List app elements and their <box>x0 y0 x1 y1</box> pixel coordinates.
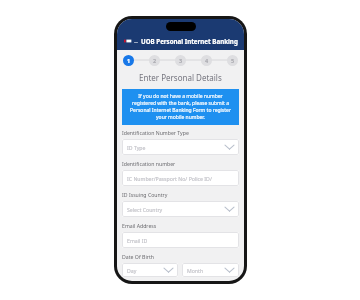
staticText: ID Issuing Country <box>122 191 168 198</box>
staticText: — <box>134 39 138 44</box>
button[interactable]: Email ID <box>122 232 239 248</box>
staticText: Day <box>127 267 137 274</box>
staticText: 3 <box>179 57 183 64</box>
other: UOB logo <box>124 39 132 43</box>
staticText: Select Country <box>127 206 163 213</box>
button[interactable]: 3 <box>175 55 186 66</box>
staticText: Month <box>187 267 204 274</box>
staticText: 4 <box>205 57 209 64</box>
staticText: IC Number/Passport No/ Police ID/Militar… <box>127 175 234 182</box>
button[interactable]: Select Country <box>122 201 239 217</box>
staticText: Email Address <box>122 222 157 229</box>
staticText: Identification Number Type <box>122 129 189 136</box>
staticText: ID Type <box>127 144 146 151</box>
button[interactable]: Month <box>182 263 239 277</box>
staticText: 1 <box>127 57 131 64</box>
staticText: If you do not have a mobile number regis… <box>127 93 234 121</box>
button[interactable]: IC Number/Passport No/ Police ID/Militar… <box>122 170 239 186</box>
staticText: 5 <box>231 57 235 64</box>
button[interactable]: 2 <box>149 55 160 66</box>
button[interactable]: 1 <box>123 55 134 66</box>
staticText: Identification number <box>122 160 176 167</box>
button[interactable]: 4 <box>201 55 212 66</box>
staticText: Enter Personal Details <box>139 72 222 83</box>
button[interactable]: ID Type <box>122 139 239 155</box>
staticText: Email ID <box>127 237 148 244</box>
staticText: UOB Personal Internet Banking <box>141 37 238 45</box>
staticText: 2 <box>153 57 157 64</box>
button[interactable]: Day <box>122 263 178 277</box>
staticText: Date Of Birth <box>122 253 154 260</box>
button[interactable]: 5 <box>227 55 238 66</box>
